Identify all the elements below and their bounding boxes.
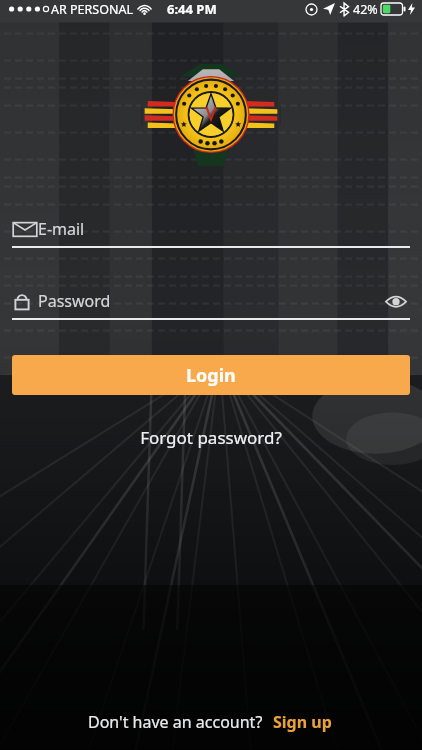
- staticText: E-mail: [38, 218, 85, 240]
- button[interactable]: Forgot password?: [130, 422, 292, 453]
- staticText: AR PERSONAL: [51, 1, 133, 18]
- button[interactable]: Sign up: [271, 708, 334, 736]
- staticText: 42%: [353, 1, 378, 18]
- button[interactable]: E-mail: [12, 218, 410, 248]
- button[interactable]: Show password: [382, 290, 410, 312]
- button[interactable]: Password: [12, 290, 410, 320]
- staticText: Login: [186, 363, 236, 388]
- button[interactable]: Login: [12, 355, 410, 395]
- staticText: Password: [38, 290, 111, 312]
- staticText: Forgot password?: [140, 426, 282, 449]
- staticText: 6:44 PM: [167, 0, 217, 18]
- staticText: Don't have an account?: [88, 711, 263, 733]
- staticText: Sign up: [273, 711, 332, 733]
